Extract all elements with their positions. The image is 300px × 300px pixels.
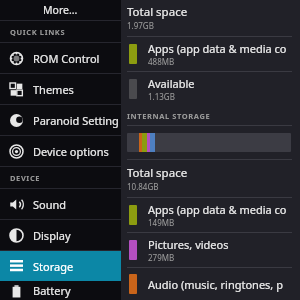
- button[interactable]: Total space: [121, 0, 300, 36]
- button[interactable]: Storage usage bar: [127, 133, 291, 152]
- button[interactable]: Display: [0, 220, 121, 250]
- staticText: 10.84GB: [127, 181, 159, 192]
- staticText: Battery: [33, 283, 71, 298]
- staticText: Audio (music, ringtones, p: [148, 277, 283, 292]
- staticText: Total space: [127, 165, 188, 181]
- staticText: Storage: [33, 259, 74, 274]
- staticText: Available: [148, 76, 195, 91]
- staticText: ROM Control: [33, 51, 100, 66]
- staticText: Sound: [33, 197, 67, 212]
- staticText: More...: [43, 3, 78, 17]
- staticText: Themes: [33, 82, 74, 97]
- staticText: Device options: [33, 144, 109, 159]
- staticText: DEVICE: [10, 173, 41, 183]
- staticText: Apps (app data & media co: [148, 202, 287, 217]
- button[interactable]: Battery: [0, 281, 121, 300]
- staticText: INTERNAL STORAGE: [127, 111, 211, 121]
- staticText: QUICK LINKS: [10, 27, 66, 37]
- staticText: 149MB: [148, 217, 175, 228]
- staticText: 1.13GB: [148, 91, 175, 102]
- staticText: 279MB: [148, 252, 175, 263]
- staticText: Display: [33, 228, 71, 243]
- button[interactable]: Themes: [0, 74, 121, 104]
- button[interactable]: More...: [0, 0, 121, 20]
- button[interactable]: Storage: [0, 251, 121, 281]
- button[interactable]: Sound: [0, 189, 121, 219]
- staticText: Pictures, videos: [148, 237, 229, 252]
- button[interactable]: Apps (app data & media co: [121, 37, 300, 71]
- staticText: Total space: [127, 4, 188, 20]
- button[interactable]: Device options: [0, 136, 121, 166]
- button[interactable]: Apps (app data & media co: [121, 198, 300, 232]
- staticText: Apps (app data & media co: [148, 41, 287, 56]
- button[interactable]: Pictures, videos: [121, 233, 300, 267]
- staticText: Paranoid Setting: [33, 113, 119, 128]
- button[interactable]: Total space: [121, 160, 300, 197]
- button[interactable]: Audio (music, ringtones, p: [121, 268, 300, 300]
- button[interactable]: ROM Control: [0, 43, 121, 73]
- button[interactable]: Available: [121, 72, 300, 106]
- staticText: 488MB: [148, 56, 175, 67]
- button[interactable]: Paranoid Setting: [0, 105, 121, 135]
- staticText: 1.97GB: [127, 20, 154, 31]
